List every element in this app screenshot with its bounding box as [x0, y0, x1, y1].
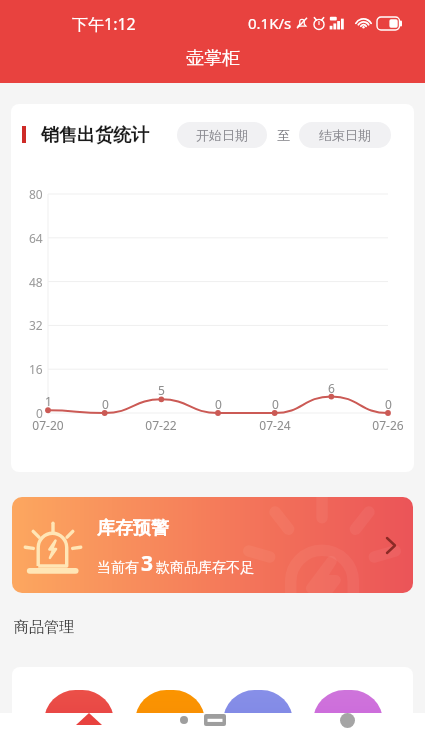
staticText: 07-20	[32, 417, 64, 433]
staticText: 64	[29, 230, 43, 246]
staticText: 0	[102, 396, 109, 412]
button[interactable]: Back	[76, 713, 102, 725]
staticText: 下午1:12	[72, 13, 136, 35]
staticText: 07-26	[372, 417, 404, 433]
staticText: 32	[29, 317, 43, 333]
staticText: 销售出货统计	[41, 124, 149, 147]
staticText: 结束日期	[319, 127, 371, 143]
staticText: 1	[45, 393, 52, 409]
button[interactable]: 开始日期	[177, 122, 267, 148]
button[interactable]: Product action 2	[135, 690, 205, 730]
staticText: 壶掌柜	[186, 47, 240, 70]
staticText: 0	[272, 396, 279, 412]
staticText: 当前有	[97, 559, 139, 577]
staticText: 5	[158, 382, 165, 398]
button[interactable]: Product action 1	[44, 690, 114, 730]
button[interactable]: 结束日期	[299, 122, 391, 148]
button[interactable]: Assistant	[340, 713, 355, 728]
staticText: 16	[29, 361, 43, 377]
staticText: 库存预警	[97, 517, 169, 540]
staticText: 商品管理	[14, 618, 74, 637]
staticText: 开始日期	[196, 127, 248, 143]
staticText: 0	[385, 396, 392, 412]
staticText: 3	[141, 549, 154, 578]
button[interactable]: Product action 3	[223, 690, 293, 730]
button[interactable]: Product action 4	[313, 690, 383, 730]
staticText: 款商品库存不足	[156, 559, 254, 577]
button[interactable]: Home	[180, 716, 188, 724]
staticText: 6	[328, 380, 335, 396]
staticText: 48	[29, 274, 43, 290]
staticText: 至	[277, 127, 290, 143]
staticText: 80	[29, 186, 43, 202]
staticText: 07-24	[259, 417, 291, 433]
button[interactable]: Recents	[204, 714, 226, 726]
button[interactable]: 库存预警	[12, 497, 413, 593]
staticText: 0	[215, 396, 222, 412]
staticText: 07-22	[145, 417, 177, 433]
staticText: 0.1K/s	[248, 13, 292, 33]
staticText: 0	[36, 405, 43, 421]
